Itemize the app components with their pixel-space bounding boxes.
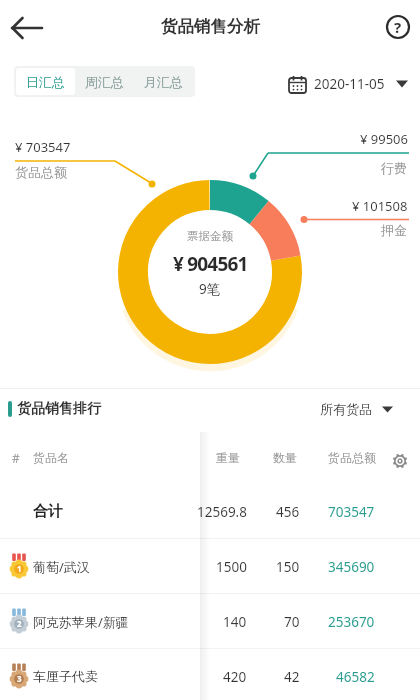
staticText: 货品销售分析 [161,16,260,37]
staticText: 2 [17,618,22,629]
staticText: 1 [17,563,22,574]
staticText: 42 [284,668,300,686]
button[interactable]: 合计 [0,483,420,538]
staticText: 9笔 [199,280,221,298]
staticText: 货品总额 [328,450,376,465]
staticText: 456 [276,503,300,521]
staticText: 150 [276,558,300,576]
staticText: 货品销售排行 [17,400,101,418]
button[interactable]: 周汇总 [75,68,134,95]
staticText: 所有货品 [320,401,372,417]
staticText: 押金 [381,222,407,238]
button[interactable]: 2020-11-05 [288,70,408,98]
staticText: 12569.8 [197,503,247,521]
staticText: ? [394,17,402,37]
button[interactable]: 月汇总 [134,68,193,95]
staticText: ¥ 101508 [352,197,408,215]
staticText: 数量 [273,450,297,465]
button[interactable]: ? [384,13,412,41]
staticText: 420 [223,668,247,686]
staticText: 票据金额 [187,229,233,243]
button[interactable] [6,9,42,45]
staticText: 703547 [328,503,375,521]
staticText: 货品总额 [15,164,67,180]
staticText: 46582 [336,668,375,686]
button[interactable]: 1 [0,538,420,593]
staticText: 阿克苏苹果/新疆 [33,613,129,631]
button[interactable]: 日汇总 [16,68,75,95]
staticText: 行费 [381,160,407,176]
staticText: 周汇总 [85,74,124,90]
staticText: 车厘子代卖 [33,668,98,684]
staticText: 70 [284,613,300,631]
staticText: 日汇总 [26,74,65,90]
staticText: # [12,450,20,466]
staticText: 月汇总 [144,74,183,90]
staticText: 重量 [216,450,240,465]
button[interactable]: 2 [0,593,420,648]
staticText: 葡萄/武汉 [33,558,90,576]
staticText: ¥ 703547 [15,138,71,156]
staticText: 345690 [328,558,375,576]
staticText: ¥ 99506 [360,130,408,148]
staticText: 货品名 [33,450,69,465]
staticText: 2020-11-05 [314,75,385,93]
staticText: 合计 [33,502,63,521]
staticText: 140 [223,613,247,631]
staticText: 3 [17,673,22,684]
staticText: 253670 [328,613,375,631]
button[interactable]: 3 [0,648,420,700]
staticText: 1500 [216,558,247,576]
staticText: ¥ 904561 [173,251,248,277]
button[interactable]: 所有货品 [320,395,393,423]
